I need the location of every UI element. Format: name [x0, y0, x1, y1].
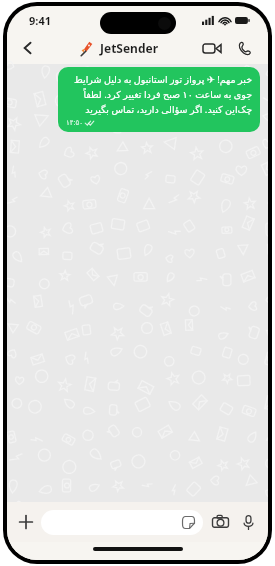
button[interactable]: خبر مهم! ✈️ پرواز تور استانبول به دلیل ش…: [58, 67, 260, 132]
button[interactable]: JetSender: [43, 40, 196, 56]
staticText: خبر مهم! ✈️ پرواز تور استانبول به دلیل ش…: [66, 73, 252, 116]
button[interactable]: Video call: [196, 32, 228, 64]
button[interactable]: Voice message: [234, 508, 262, 536]
staticText: JetSender: [100, 40, 159, 56]
button[interactable]: [41, 510, 203, 535]
button[interactable]: Back: [13, 33, 43, 63]
staticText: ۱۴:۵۰: [66, 118, 83, 128]
button[interactable]: Camera: [206, 508, 234, 536]
button[interactable]: Attach: [11, 507, 41, 537]
staticText: 9:41: [29, 13, 51, 28]
button[interactable]: Voice call: [228, 32, 260, 64]
